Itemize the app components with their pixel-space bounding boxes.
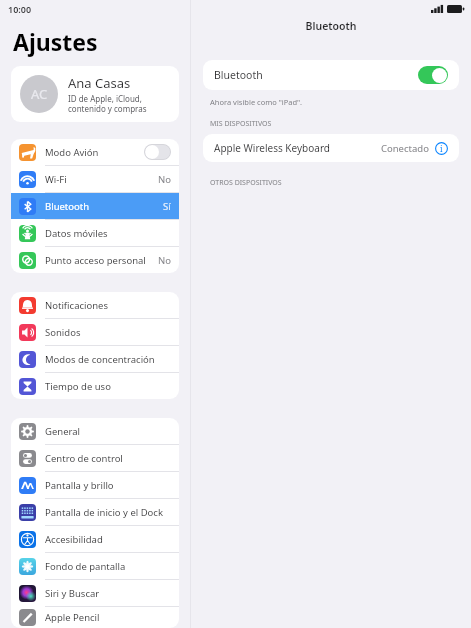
button[interactable]: Modo Avión [144,144,171,160]
staticText: General [45,425,81,438]
button[interactable]: Sonidos [11,319,179,345]
button[interactable]: Wi-Fi [11,166,179,192]
button[interactable]: Pantalla y brillo [11,472,179,498]
staticText: MIS DISPOSITIVOS [210,119,272,129]
staticText: AC [31,85,48,103]
staticText: Wi-Fi [45,173,67,186]
button[interactable]: Apple Pencil [11,607,179,628]
staticText: Punto acceso personal [45,254,146,267]
staticText: Ana Casas [68,74,131,92]
staticText: Sí [163,200,171,213]
button[interactable]: Bluetooth activado [418,66,448,84]
staticText: No [158,173,171,186]
staticText: i [440,143,443,154]
button[interactable]: Siri y Buscar [11,580,179,606]
button[interactable]: General [11,418,179,444]
staticText: Pantalla y brillo [45,479,114,492]
button[interactable]: Apple Wireless Keyboard [203,134,459,162]
button[interactable]: Pantalla de inicio y el Dock [11,499,179,525]
button[interactable]: Modo Avión [11,139,179,165]
button[interactable]: Bluetooth [203,60,459,90]
staticText: Accesibilidad [45,533,103,546]
staticText: Bluetooth [214,68,263,82]
staticText: Conectado [381,142,429,155]
staticText: Tiempo de uso [45,380,111,393]
staticText: Notificaciones [45,299,108,312]
staticText: Siri y Buscar [45,587,100,600]
staticText: Apple Pencil [45,611,100,624]
button[interactable]: Modos de concentración [11,346,179,372]
button[interactable]: AC [11,66,179,122]
staticText: Ajustes [13,26,98,57]
button[interactable]: Tiempo de uso [11,373,179,399]
staticText: No [158,254,171,267]
staticText: Sonidos [45,326,81,339]
button[interactable]: Centro de control [11,445,179,471]
staticText: Fondo de pantalla [45,560,126,573]
button[interactable]: Accesibilidad [11,526,179,552]
staticText: Centro de control [45,452,123,465]
staticText: Ahora visible como "iPad". [210,97,303,107]
staticText: Bluetooth [45,200,90,213]
staticText: Apple Wireless Keyboard [214,141,330,155]
button[interactable]: Bluetooth [11,193,179,219]
button[interactable]: Más información [435,142,448,155]
staticText: 10:00 [8,3,32,15]
staticText: ID de Apple, iCloud, contenido y compras [68,93,147,114]
button[interactable]: Notificaciones [11,292,179,318]
button[interactable]: Punto acceso personal [11,247,179,273]
staticText: Modos de concentración [45,353,155,366]
staticText: Modo Avión [45,146,99,159]
button[interactable]: Datos móviles [11,220,179,246]
staticText: Pantalla de inicio y el Dock [45,506,163,519]
staticText: Bluetooth [191,19,471,33]
staticText: OTROS DISPOSITIVOS [210,178,282,188]
button[interactable]: Fondo de pantalla [11,553,179,579]
staticText: Datos móviles [45,227,108,240]
